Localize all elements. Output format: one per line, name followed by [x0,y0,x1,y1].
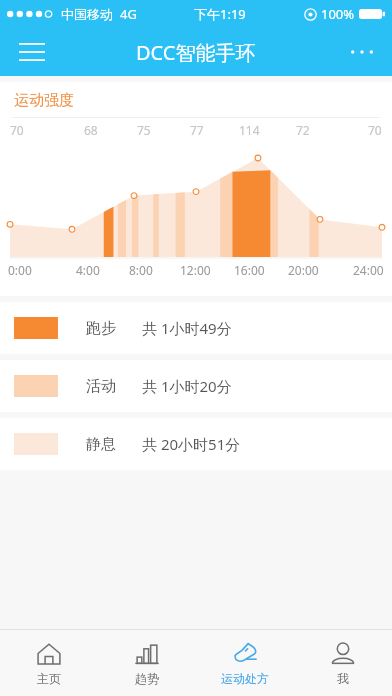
button[interactable]: 跑步 [0,302,392,354]
staticText: 100% [321,5,355,23]
staticText: DCC智能手环 [136,39,256,66]
staticText: 主页 [37,671,61,686]
staticText: 中国移动 [61,6,113,22]
staticText: 我 [337,671,349,686]
button[interactable]: 运动处方 [196,630,294,696]
staticText: 12:00 [180,262,211,278]
staticText: 活动 [86,377,116,396]
staticText: 下午1:19 [194,5,246,23]
staticText: 跑步 [86,319,116,338]
staticText: 20:00 [288,262,319,278]
staticText: 68 [84,122,98,138]
button[interactable]: 趋势 [98,630,196,696]
staticText: 静息 [86,435,116,454]
button[interactable]: More options [340,30,384,74]
staticText: 114 [239,122,260,138]
button[interactable]: 主页 [0,630,98,696]
staticText: 趋势 [135,671,159,686]
staticText: 70 [10,122,24,138]
staticText: 75 [137,122,151,138]
button[interactable]: Menu [10,30,54,74]
staticText: 70 [368,122,382,138]
staticText: 共 20小时51分 [142,434,241,454]
staticText: 共 1小时49分 [142,318,232,338]
staticText: 运动处方 [221,671,269,686]
staticText: 0:00 [8,262,32,278]
staticText: 24:00 [353,262,384,278]
button[interactable]: 静息 [0,418,392,470]
button[interactable]: 活动 [0,360,392,412]
staticText: 16:00 [234,262,265,278]
staticText: 72 [296,122,310,138]
staticText: 共 1小时20分 [142,376,232,396]
staticText: 4:00 [76,262,100,278]
staticText: 4G [120,5,137,23]
staticText: 运动强度 [14,91,74,110]
staticText: 77 [190,122,204,138]
button[interactable]: 我 [294,630,392,696]
staticText: 8:00 [129,262,153,278]
